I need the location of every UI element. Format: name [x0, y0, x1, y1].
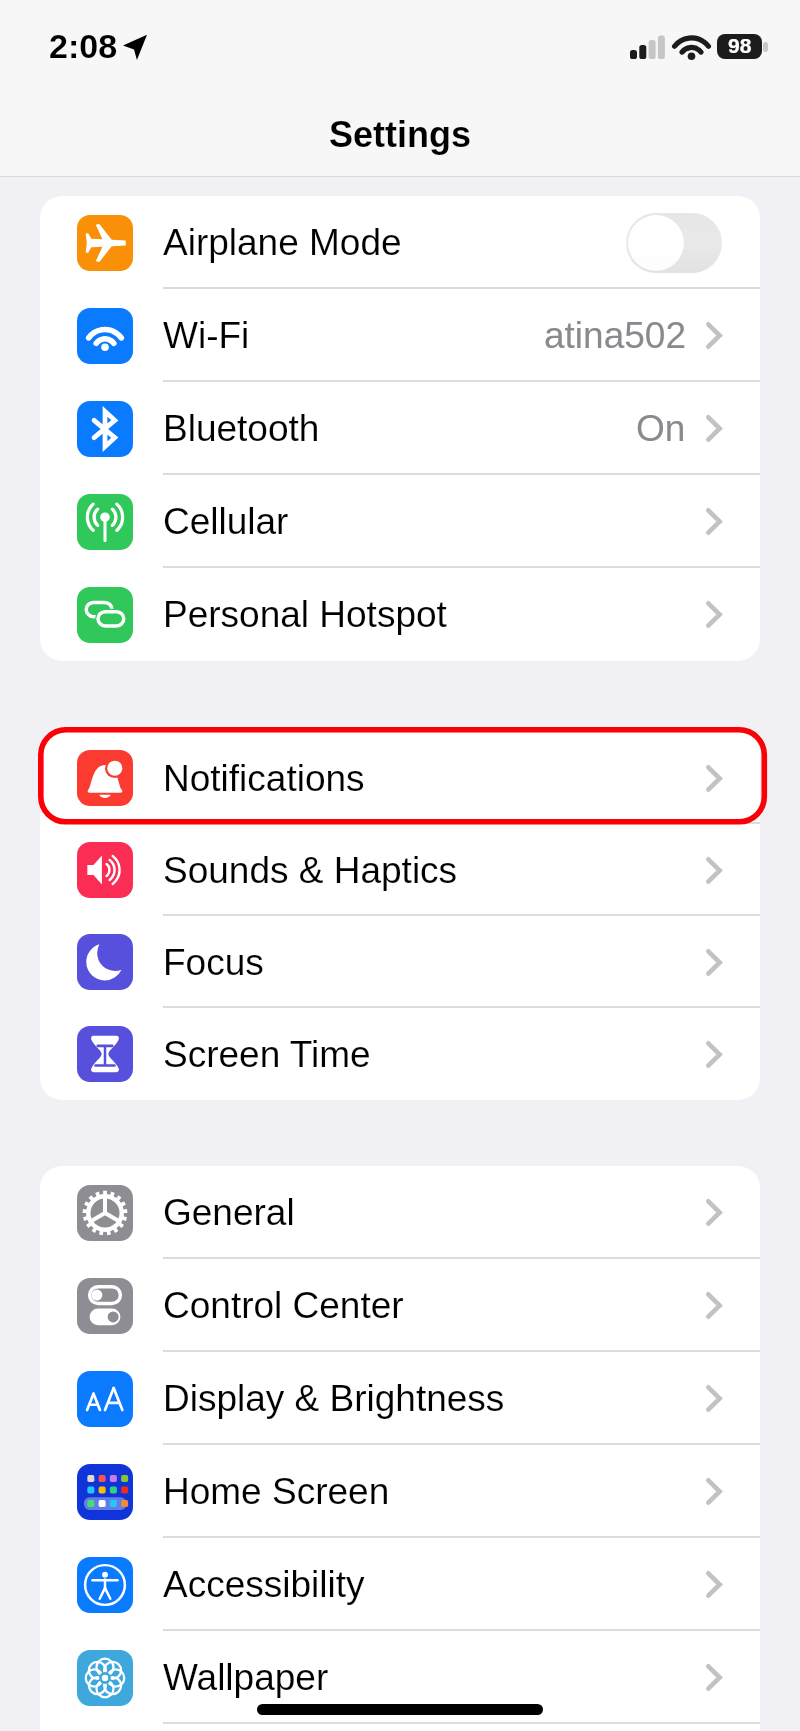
staticText: Wallpaper — [163, 1657, 329, 1698]
button[interactable]: Personal Hotspot — [40, 568, 760, 661]
staticText: Accessibility — [163, 1564, 365, 1605]
staticText: Airplane Mode — [163, 222, 402, 263]
button[interactable]: Bluetooth — [40, 382, 760, 475]
staticText: General — [163, 1192, 295, 1233]
button[interactable]: Cellular — [40, 475, 760, 568]
button[interactable]: Focus — [40, 916, 760, 1008]
staticText: Wi-Fi — [163, 315, 250, 356]
button[interactable]: General — [40, 1166, 760, 1259]
button[interactable]: Notifications — [40, 732, 760, 824]
staticText: Bluetooth — [163, 408, 320, 449]
button[interactable]: Wallpaper — [40, 1631, 760, 1724]
staticText: 2:08 — [49, 27, 118, 65]
staticText: Settings — [329, 114, 472, 154]
staticText: Cellular — [163, 501, 289, 542]
staticText: Screen Time — [163, 1034, 371, 1075]
button[interactable]: Sounds & Haptics — [40, 824, 760, 916]
button[interactable]: Accessibility — [40, 1538, 760, 1631]
button[interactable]: Display & Brightness — [40, 1352, 760, 1445]
button[interactable]: Airplane Mode toggle, off — [626, 213, 722, 273]
staticText: Home Screen — [163, 1471, 390, 1512]
staticText: Control Center — [163, 1285, 404, 1326]
button[interactable]: Airplane Mode — [40, 196, 760, 289]
staticText: Display & Brightness — [163, 1378, 505, 1419]
staticText: Sounds & Haptics — [163, 850, 458, 891]
button[interactable]: Screen Time — [40, 1008, 760, 1100]
staticText: atina502 — [544, 315, 686, 356]
button[interactable]: Home Screen — [40, 1445, 760, 1538]
staticText: Focus — [163, 942, 264, 983]
button[interactable]: Control Center — [40, 1259, 760, 1352]
staticText: Notifications — [163, 758, 365, 799]
button[interactable]: Wi-Fi — [40, 289, 760, 382]
staticText: On — [636, 408, 686, 449]
staticText: Personal Hotspot — [163, 594, 447, 635]
staticText: 98 — [728, 34, 752, 57]
